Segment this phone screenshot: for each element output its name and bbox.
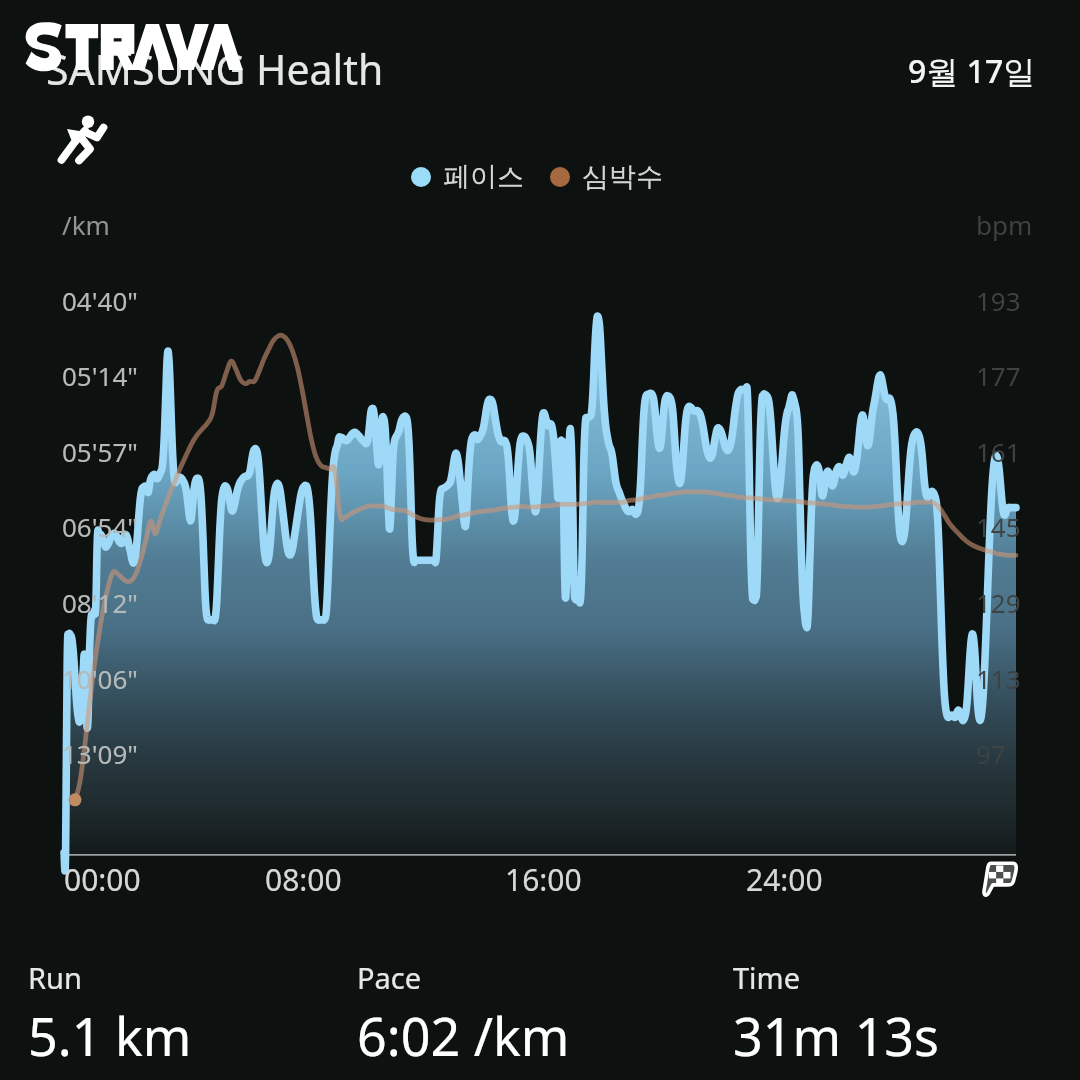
staticText: 페이스 — [443, 160, 524, 194]
staticText: 00:00 — [64, 859, 141, 900]
staticText: 08'12" — [62, 585, 138, 620]
staticText: 05'14" — [62, 358, 138, 393]
staticText: 심박수 — [582, 160, 663, 194]
staticText: 113 — [976, 661, 1021, 696]
staticText: 24:00 — [746, 859, 823, 900]
staticText: Pace — [357, 958, 422, 997]
button[interactable]: 페이스 — [411, 160, 524, 194]
staticText: 13'09" — [62, 736, 138, 771]
staticText: /km — [62, 207, 110, 242]
button[interactable]: Time — [733, 958, 1033, 1068]
button[interactable]: Pace — [357, 958, 657, 1068]
staticText: 05'57" — [62, 434, 138, 469]
staticText: 161 — [976, 434, 1021, 469]
staticText: Run — [28, 958, 82, 997]
staticText: 31m 13s — [733, 1000, 940, 1068]
button[interactable]: Strava — [28, 24, 236, 70]
staticText: 6:02 /km — [357, 1000, 570, 1068]
staticText: 177 — [976, 358, 1021, 393]
button[interactable]: 심박수 — [550, 160, 663, 194]
staticText: 129 — [976, 585, 1021, 620]
button[interactable]: Finish — [981, 859, 1017, 895]
staticText: Time — [733, 958, 801, 997]
staticText: bpm — [976, 207, 1033, 242]
button[interactable]: Run — [28, 958, 328, 1068]
staticText: 08:00 — [265, 859, 342, 900]
staticText: 06'54" — [62, 509, 138, 544]
staticText: 193 — [976, 283, 1021, 318]
button[interactable]: Running workout — [57, 114, 107, 164]
staticText: 145 — [976, 509, 1021, 544]
staticText: 04'40" — [62, 283, 138, 318]
staticText: SAMSUNG Health — [46, 41, 384, 97]
staticText: 5.1 km — [28, 1000, 192, 1068]
staticText: 97 — [976, 736, 1006, 771]
staticText: 9월 17일 — [908, 49, 1036, 93]
staticText: 10'06" — [62, 661, 138, 696]
staticText: 16:00 — [505, 859, 582, 900]
